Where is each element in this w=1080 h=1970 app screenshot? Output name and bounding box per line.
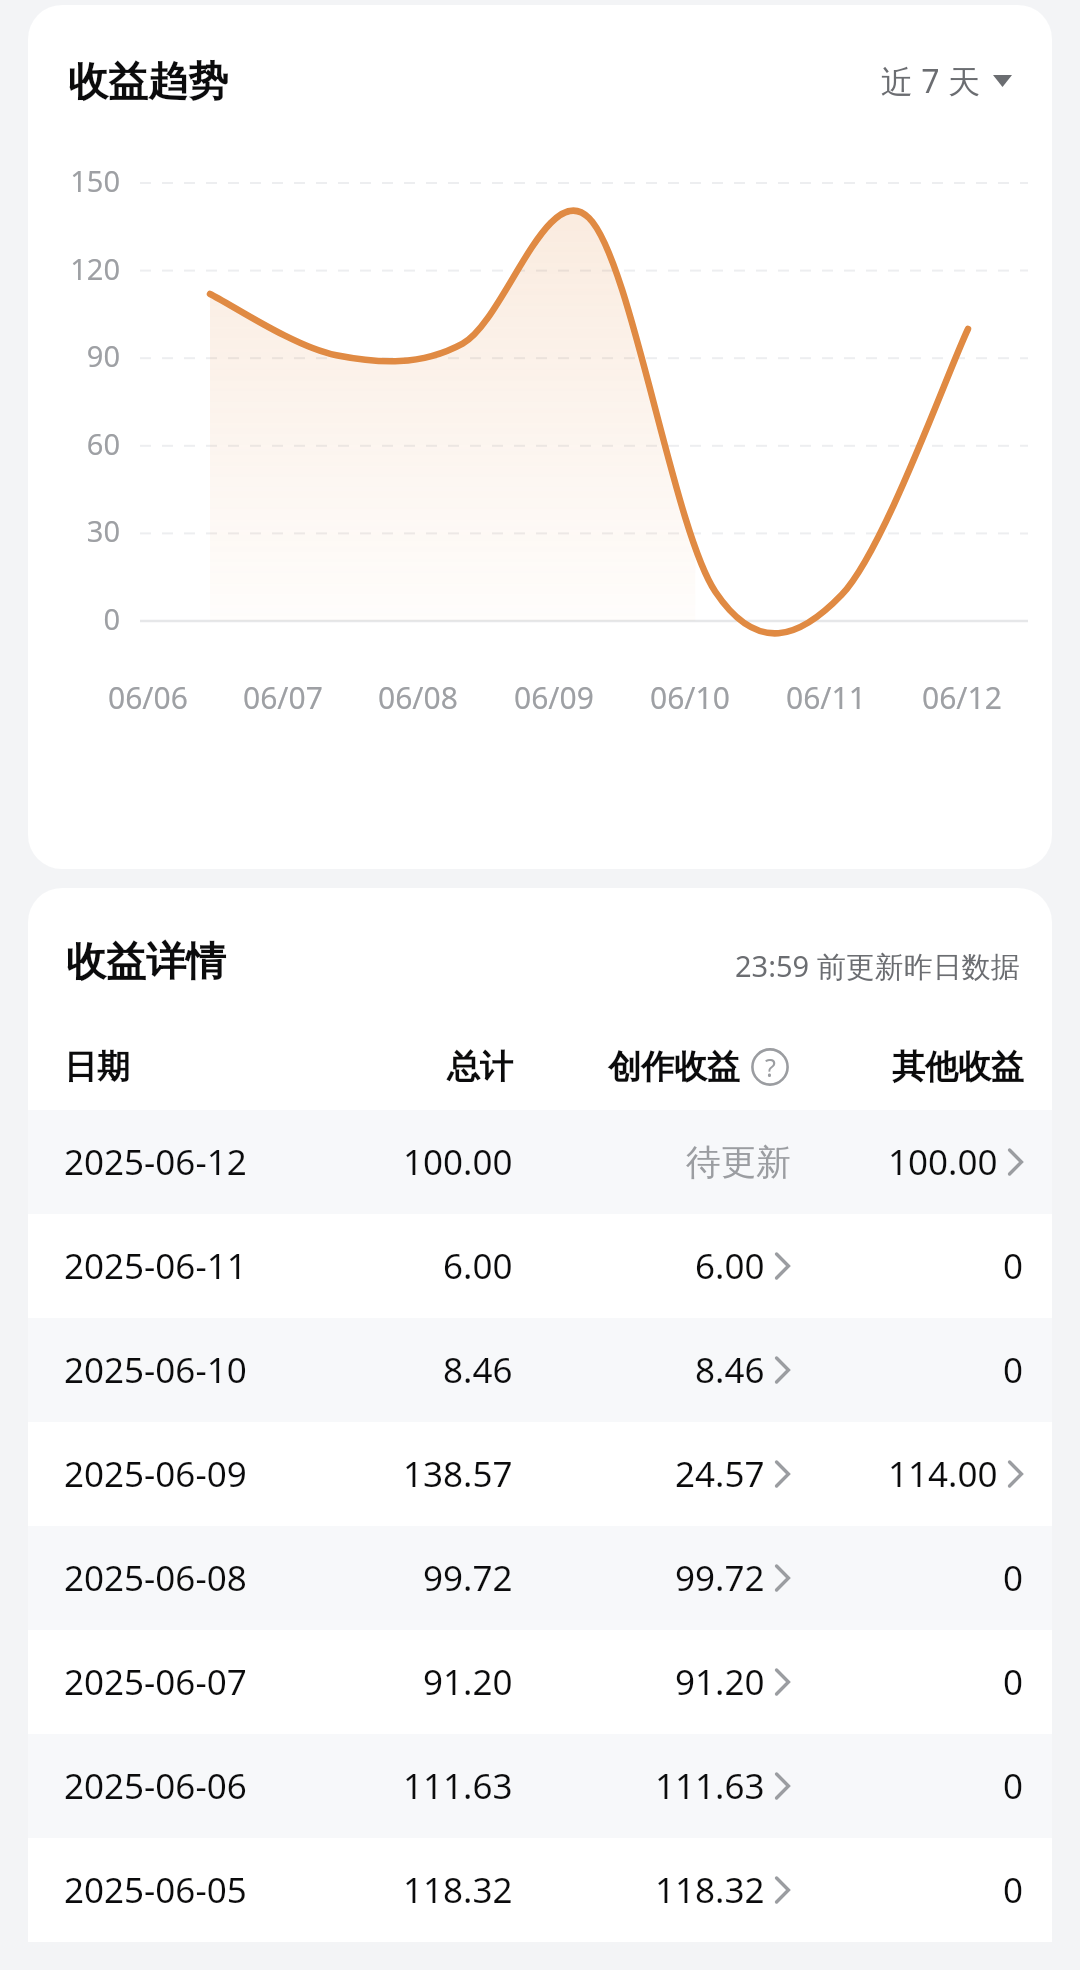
staticText: 2025-06-12 <box>64 1138 247 1186</box>
button[interactable]: 2025-06-08 <box>28 1526 1052 1630</box>
staticText: 6.00 <box>695 1242 765 1290</box>
staticText: 0 <box>1003 1554 1024 1602</box>
staticText: 23:59 前更新昨日数据 <box>735 946 1020 986</box>
staticText: 06/08 <box>378 677 458 718</box>
staticText: 8.46 <box>695 1346 765 1394</box>
staticText: 120 <box>38 249 120 288</box>
staticText: 60 <box>38 424 120 463</box>
button[interactable]: 2025-06-05 <box>28 1838 1052 1942</box>
staticText: 06/06 <box>108 677 188 718</box>
staticText: 2025-06-11 <box>64 1242 247 1290</box>
staticText: ? <box>765 1050 776 1084</box>
staticText: 91.20 <box>423 1658 513 1706</box>
staticText: 8.46 <box>443 1346 513 1394</box>
button[interactable]: 2025-06-11 <box>28 1214 1052 1318</box>
staticText: 收益详情 <box>66 936 226 986</box>
staticText: 2025-06-05 <box>64 1866 247 1914</box>
button[interactable]: 2025-06-06 <box>28 1734 1052 1838</box>
staticText: 100.00 <box>403 1138 513 1186</box>
button[interactable]: 近 7 天 <box>875 51 1018 111</box>
staticText: 近 7 天 <box>881 59 980 103</box>
staticText: 91.20 <box>675 1658 765 1706</box>
staticText: 其他收益 <box>892 1046 1024 1088</box>
staticText: 2025-06-06 <box>64 1762 247 1810</box>
staticText: 06/07 <box>243 677 323 718</box>
staticText: 06/12 <box>922 677 1002 718</box>
staticText: 99.72 <box>423 1554 513 1602</box>
staticText: 100.00 <box>888 1138 998 1186</box>
staticText: 2025-06-08 <box>64 1554 247 1602</box>
staticText: 06/09 <box>514 677 594 718</box>
staticText: 待更新 <box>686 1140 791 1184</box>
button[interactable]: 2025-06-07 <box>28 1630 1052 1734</box>
staticText: 06/11 <box>786 677 866 718</box>
staticText: 0 <box>1003 1658 1024 1706</box>
staticText: 118.32 <box>655 1866 765 1914</box>
button[interactable]: 2025-06-12 <box>28 1110 1052 1214</box>
button[interactable]: 2025-06-10 <box>28 1318 1052 1422</box>
staticText: 2025-06-07 <box>64 1658 247 1706</box>
staticText: 150 <box>38 161 120 200</box>
staticText: 0 <box>1003 1242 1024 1290</box>
staticText: 114.00 <box>888 1450 998 1498</box>
staticText: 0 <box>1003 1866 1024 1914</box>
staticText: 6.00 <box>443 1242 513 1290</box>
staticText: 30 <box>38 511 120 550</box>
staticText: 0 <box>38 599 120 638</box>
staticText: 0 <box>1003 1346 1024 1394</box>
staticText: 2025-06-10 <box>64 1346 247 1394</box>
staticText: 2025-06-09 <box>64 1450 247 1498</box>
staticText: 99.72 <box>675 1554 765 1602</box>
staticText: 06/10 <box>650 677 730 718</box>
staticText: 收益趋势 <box>68 56 228 106</box>
button[interactable]: 2025-06-09 <box>28 1422 1052 1526</box>
staticText: 111.63 <box>403 1762 513 1810</box>
staticText: 118.32 <box>403 1866 513 1914</box>
staticText: 90 <box>38 336 120 375</box>
staticText: 日期 <box>64 1046 130 1088</box>
staticText: 0 <box>1003 1762 1024 1810</box>
staticText: 创作收益 <box>608 1046 740 1088</box>
button[interactable]: 创作收益说明 <box>749 1046 791 1088</box>
staticText: 111.63 <box>655 1762 765 1810</box>
staticText: 138.57 <box>403 1450 513 1498</box>
staticText: 总计 <box>447 1046 513 1088</box>
staticText: 24.57 <box>675 1450 765 1498</box>
